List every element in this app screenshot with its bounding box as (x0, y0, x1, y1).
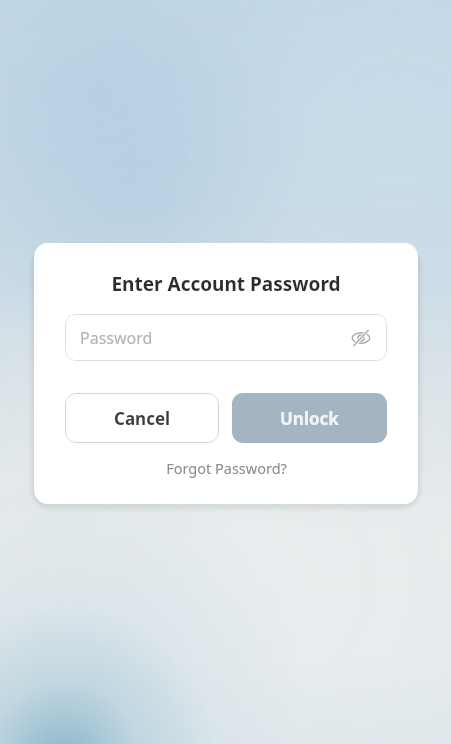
staticText: Forgot Password? (166, 458, 287, 478)
button[interactable]: Forgot Password? (158, 456, 295, 480)
staticText: Enter Account Password (111, 271, 341, 297)
button[interactable]: Unlock (232, 393, 387, 443)
button[interactable]: Cancel (65, 393, 219, 443)
staticText: Unlock (280, 407, 339, 430)
staticText: Cancel (114, 407, 171, 430)
button[interactable]: Password (65, 314, 387, 361)
button[interactable]: Show password (349, 326, 373, 350)
staticText: Password (80, 327, 153, 349)
